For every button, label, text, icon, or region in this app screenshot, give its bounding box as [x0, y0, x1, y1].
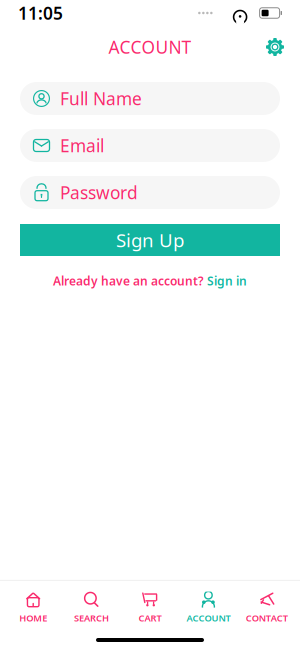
staticText: Full Name: [60, 87, 142, 110]
staticText: SEARCH: [74, 612, 109, 624]
staticText: Password: [60, 181, 138, 204]
staticText: Already have an account?: [53, 273, 204, 289]
staticText: HOME: [19, 612, 47, 624]
button[interactable]: CART: [121, 590, 179, 626]
button[interactable]: Settings: [258, 30, 292, 64]
button[interactable]: Email: [20, 129, 280, 162]
button[interactable]: Password: [20, 176, 280, 209]
staticText: CONTACT: [246, 612, 288, 624]
staticText: CART: [138, 612, 161, 624]
staticText: ACCOUNT: [108, 35, 191, 58]
button[interactable]: Sign Up: [20, 224, 280, 256]
staticText: ACCOUNT: [186, 612, 230, 624]
staticText: Sign Up: [116, 228, 184, 252]
button[interactable]: Already have an account?: [20, 271, 280, 291]
button[interactable]: ACCOUNT: [179, 590, 238, 626]
button[interactable]: HOME: [4, 590, 62, 626]
button[interactable]: SEARCH: [62, 590, 121, 626]
staticText: Email: [60, 134, 104, 157]
staticText: 11:05: [18, 1, 63, 24]
button[interactable]: CONTACT: [238, 590, 296, 626]
button[interactable]: Full Name: [20, 82, 280, 115]
staticText: Sign in: [207, 273, 247, 289]
